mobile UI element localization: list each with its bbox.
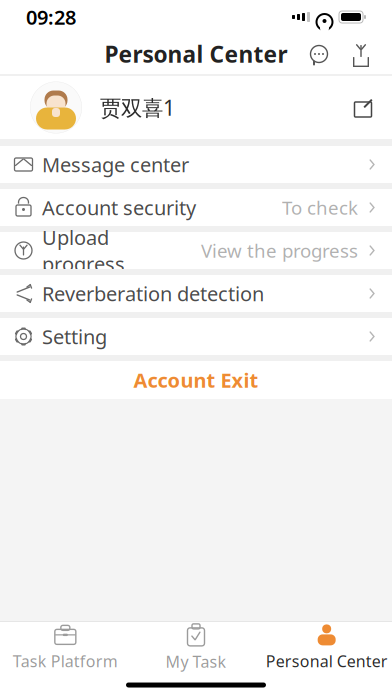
button[interactable]: 贾双喜1 — [0, 76, 392, 139]
staticText: My Task — [165, 651, 226, 672]
staticText: Upload progress — [42, 224, 125, 277]
staticText: Personal Center — [266, 650, 388, 672]
button[interactable]: Reverberation detection — [0, 275, 392, 312]
staticText: Task Platform — [13, 650, 118, 672]
staticText: Personal Center — [104, 39, 287, 69]
button[interactable]: Account security — [0, 189, 392, 226]
staticText: Account Exit — [133, 367, 258, 393]
button[interactable]: Task Platform — [0, 624, 131, 672]
staticText: 贾双喜1 — [100, 93, 175, 122]
staticText: 09:28 — [26, 4, 76, 30]
staticText: Reverberation detection — [42, 280, 264, 307]
button[interactable]: My Task — [131, 624, 261, 672]
button[interactable]: Message center — [0, 146, 392, 183]
button[interactable]: Upload progress — [0, 232, 392, 269]
button[interactable]: Share — [346, 39, 376, 69]
staticText: Message center — [42, 151, 189, 178]
button[interactable]: Personal Center — [261, 624, 392, 672]
staticText: View the progress — [201, 238, 358, 263]
button[interactable]: Account Exit — [0, 361, 392, 399]
staticText: Account security — [42, 194, 196, 221]
staticText: Setting — [42, 323, 107, 350]
staticText: To check — [282, 195, 358, 220]
button[interactable]: Setting — [0, 318, 392, 355]
button[interactable]: Messages — [304, 39, 334, 69]
